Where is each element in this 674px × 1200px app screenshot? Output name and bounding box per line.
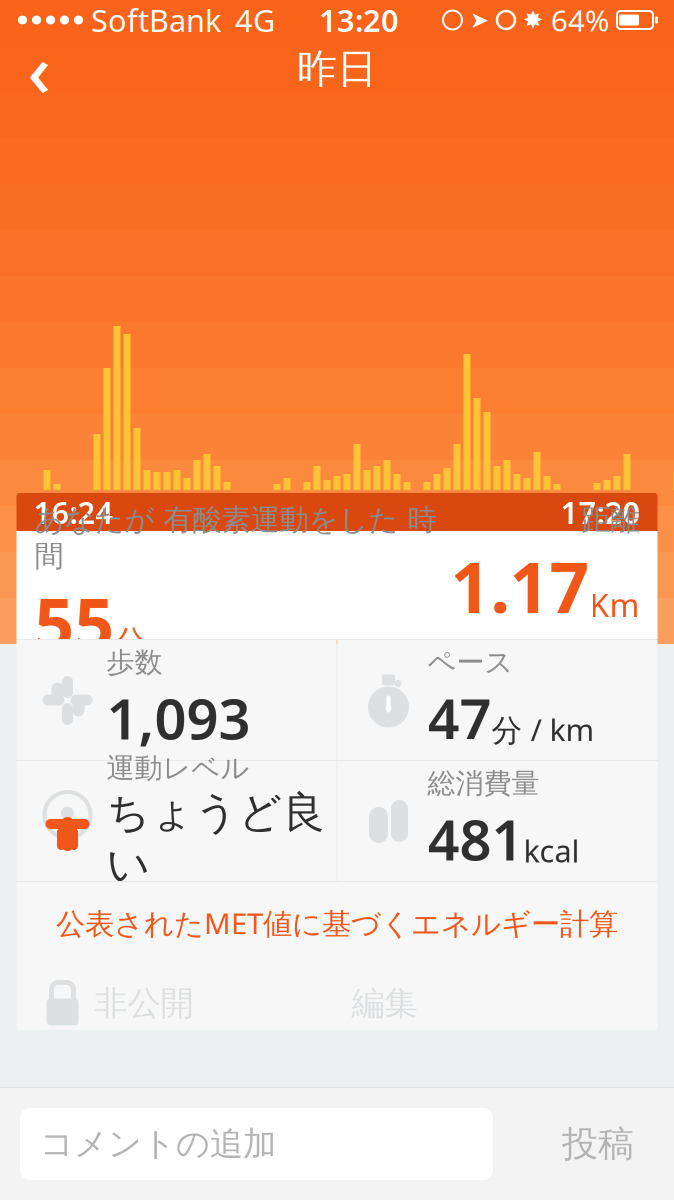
- button[interactable]: 公表されたMET値に基づくエネルギー計算: [16, 891, 657, 954]
- staticText: 非公開: [94, 983, 193, 1024]
- staticText: 1,093: [106, 680, 250, 755]
- staticText: 投稿: [562, 1122, 634, 1166]
- staticText: 総消費量: [427, 766, 539, 800]
- staticText: ✸: [523, 6, 543, 34]
- staticText: Km: [589, 583, 639, 626]
- staticText: 編集: [351, 983, 417, 1024]
- staticText: 47: [427, 680, 491, 755]
- staticText: 分 / km: [491, 709, 594, 750]
- staticText: 4G: [235, 0, 275, 40]
- button[interactable]: 非公開: [44, 972, 193, 1034]
- staticText: 13:20: [319, 0, 399, 40]
- staticText: 16:24: [33, 492, 113, 532]
- staticText: あなたが 有酸素運動をした 時間: [34, 502, 436, 574]
- staticText: 17:20: [560, 492, 640, 532]
- staticText: 64%: [551, 0, 609, 39]
- staticText: 55: [34, 576, 114, 668]
- button[interactable]: Back: [10, 40, 68, 98]
- button[interactable]: コメントの追加: [20, 1108, 493, 1180]
- staticText: ‹: [27, 21, 50, 117]
- staticText: 運動レベル: [106, 751, 249, 785]
- staticText: 481: [427, 801, 523, 876]
- button[interactable]: 編集: [345, 975, 423, 1032]
- staticText: SoftBank: [91, 0, 221, 40]
- staticText: ペース: [427, 645, 513, 679]
- staticText: ➤: [470, 7, 489, 33]
- staticText: 昨日: [297, 44, 377, 93]
- staticText: コメントの追加: [40, 1123, 276, 1164]
- staticText: ちょうど良い: [106, 786, 325, 891]
- staticText: 距離: [581, 502, 639, 538]
- staticText: 歩数: [106, 645, 162, 679]
- staticText: kcal: [523, 830, 579, 871]
- staticText: 1.17: [450, 540, 589, 632]
- button[interactable]: 投稿: [548, 1112, 648, 1176]
- staticText: 分: [114, 623, 146, 662]
- staticText: 公表されたMET値に基づくエネルギー計算: [56, 903, 618, 942]
